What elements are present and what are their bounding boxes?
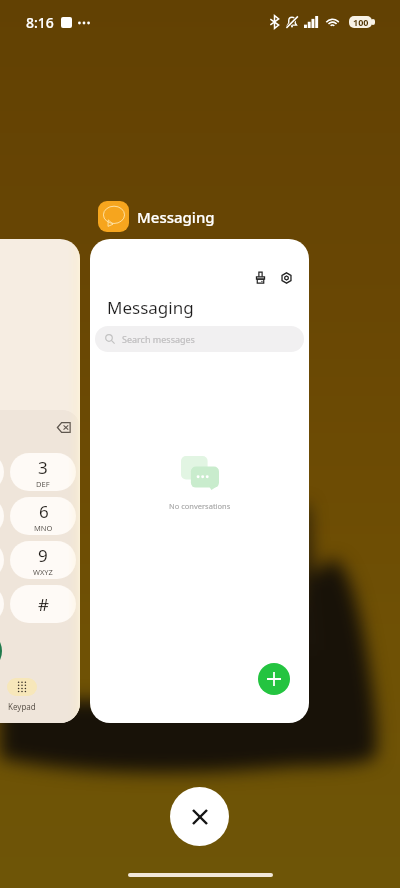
staticText: 100 (353, 16, 369, 28)
staticText: # (38, 593, 49, 616)
button[interactable]: Settings (276, 267, 297, 288)
staticText: MNO (34, 523, 53, 533)
staticText: Messaging (107, 296, 194, 319)
staticText: 9 (38, 544, 48, 567)
button[interactable]: 6 (10, 497, 76, 535)
staticText: No conversations (169, 501, 231, 511)
staticText: DEF (36, 479, 50, 489)
button[interactable]: New conversation (258, 663, 290, 695)
button[interactable]: Themes (250, 267, 271, 288)
button[interactable]: Search messages (95, 326, 304, 352)
button[interactable]: 3 (10, 453, 76, 491)
staticText: WXYZ (33, 567, 53, 577)
staticText: 6 (39, 500, 49, 523)
staticText: Search messages (122, 333, 195, 345)
staticText: Keypad (8, 701, 36, 712)
button[interactable]: 9 (10, 541, 76, 579)
staticText: 3 (38, 456, 48, 479)
staticText: 8:16 (26, 13, 54, 32)
button[interactable]: # (10, 585, 76, 623)
button[interactable] (7, 678, 37, 696)
button[interactable]: Close all (170, 787, 229, 846)
staticText: Messaging (137, 207, 215, 227)
